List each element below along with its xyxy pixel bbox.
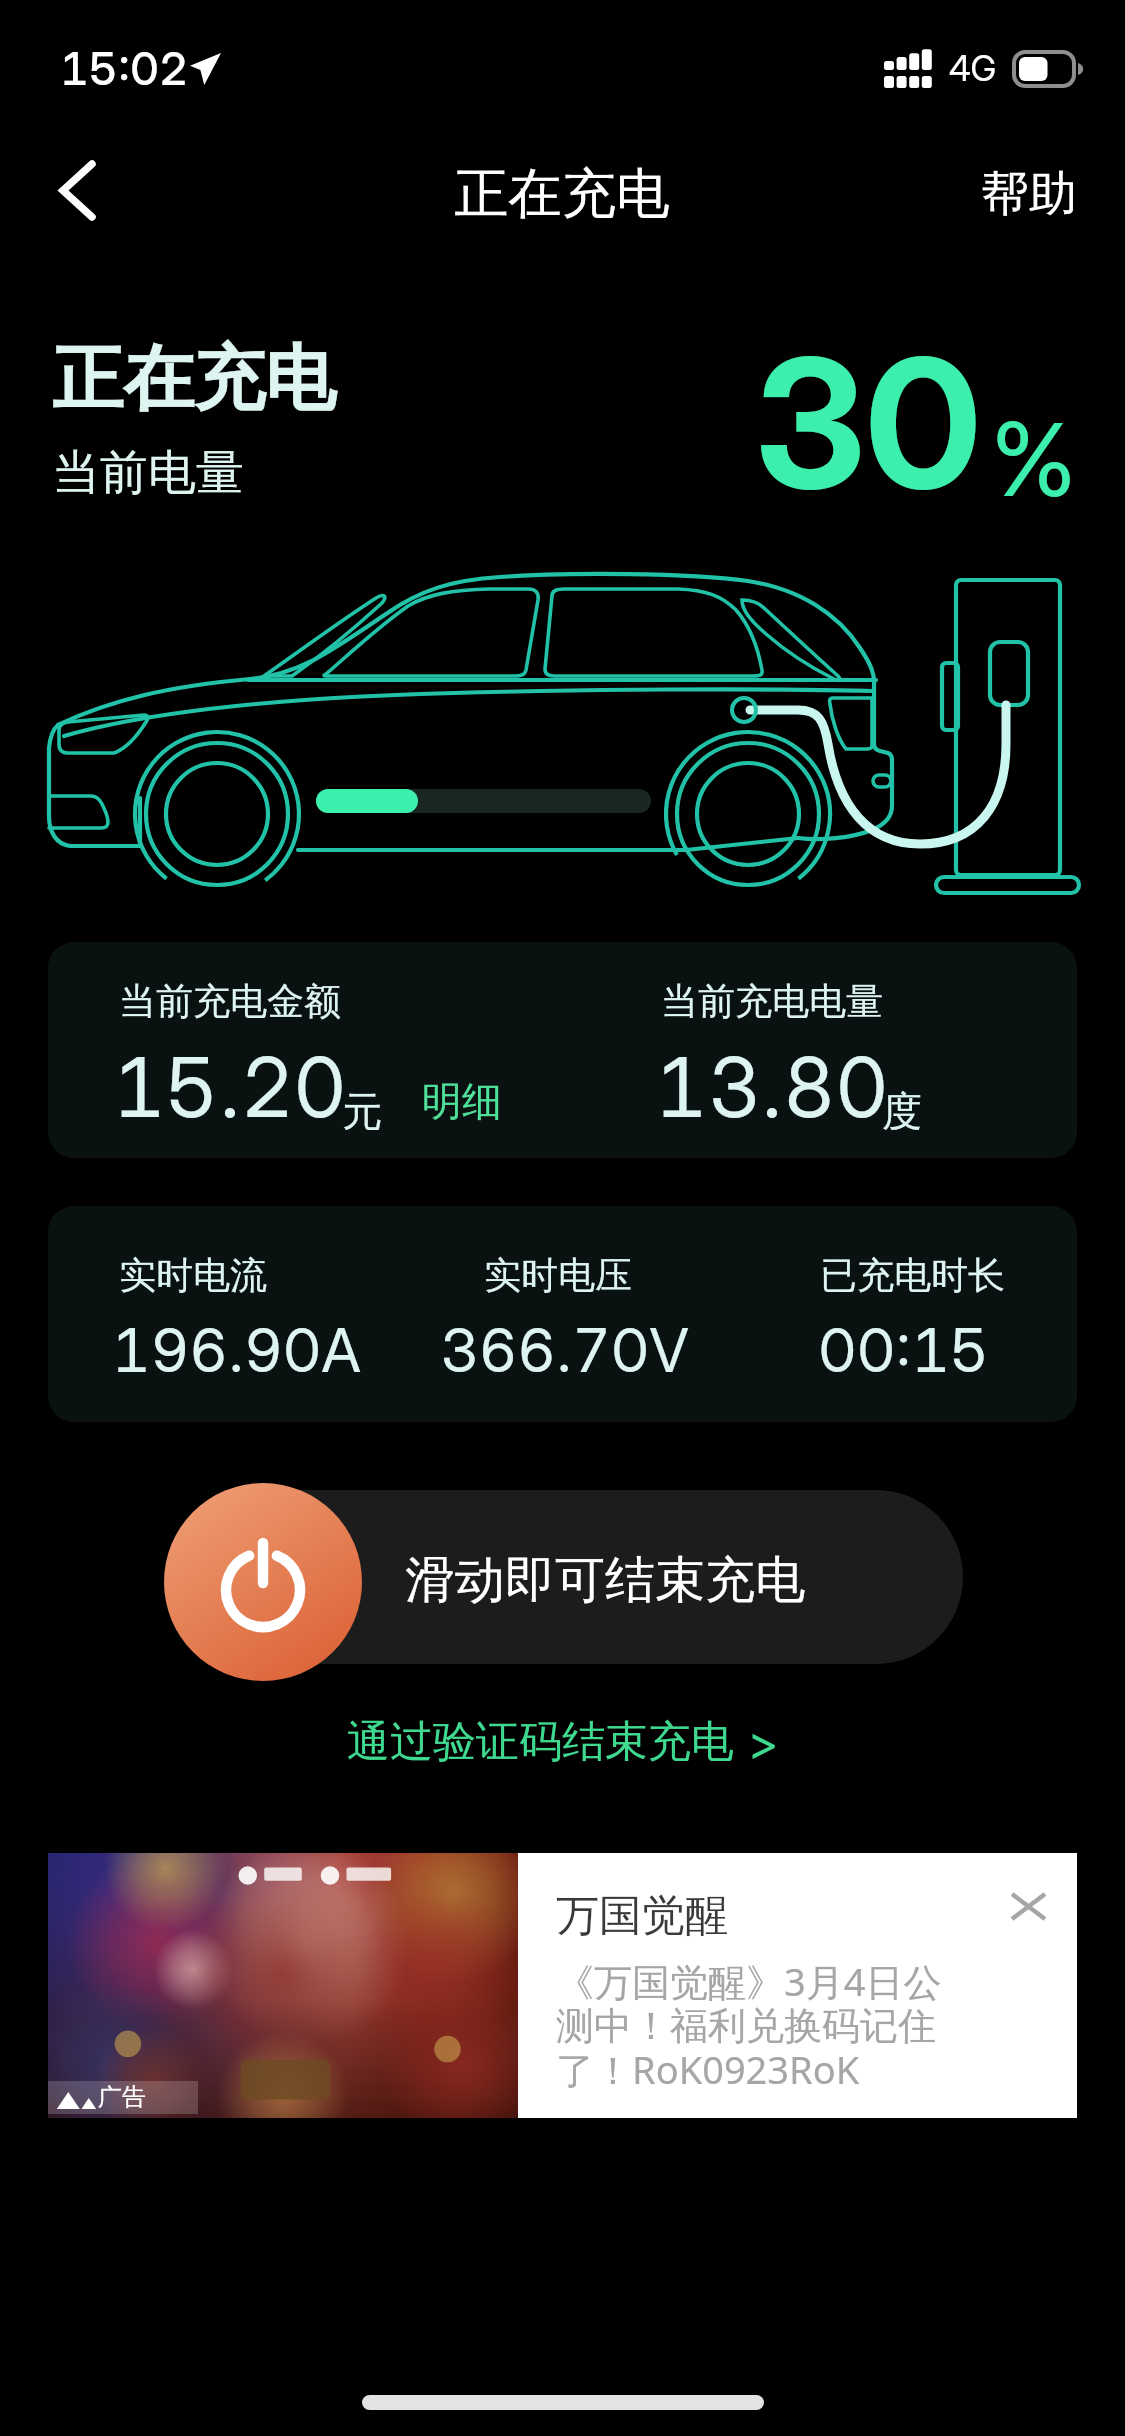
- button[interactable]: 通过验证码结束充电: [317, 1699, 809, 1785]
- staticText: 当前充电电量: [661, 978, 883, 1025]
- staticText: 00:15: [818, 1314, 989, 1387]
- staticText: 已充电时长: [820, 1252, 1005, 1299]
- staticText: 通过验证码结束充电: [347, 1715, 734, 1769]
- button[interactable]: 广告图片: [48, 1853, 518, 2118]
- staticText: 《万国觉醒》3月4日公测中！福利兑换码记住了！RoK0923RoK: [556, 1955, 968, 2095]
- staticText: 4G: [949, 47, 997, 89]
- staticText: 当前电量: [52, 443, 244, 503]
- staticText: 正在充电: [454, 160, 670, 228]
- staticText: 帮助: [981, 164, 1077, 224]
- staticText: 滑动即可结束充电: [405, 1549, 805, 1612]
- staticText: 196.90A: [112, 1314, 361, 1387]
- staticText: 广告: [98, 2082, 146, 2112]
- staticText: 实时电压: [484, 1252, 632, 1299]
- staticText: 元: [342, 1086, 382, 1136]
- staticText: 度: [882, 1086, 922, 1136]
- button[interactable]: 当前充电金额: [48, 942, 1077, 1158]
- staticText: %: [991, 398, 1077, 520]
- staticText: 15:02: [60, 41, 189, 95]
- staticText: 13.80: [655, 1038, 889, 1137]
- staticText: 正在充电: [52, 335, 336, 424]
- button[interactable]: 关闭: [1000, 1878, 1074, 1952]
- staticText: >: [748, 1713, 779, 1771]
- button[interactable]: 结束充电: [164, 1483, 362, 1681]
- staticText: 30: [755, 316, 982, 531]
- staticText: 366.70V: [440, 1314, 689, 1387]
- button[interactable]: 明细: [408, 1074, 516, 1128]
- button[interactable]: Back: [24, 132, 138, 242]
- staticText: 15.20: [113, 1038, 347, 1137]
- staticText: 万国觉醒: [556, 1889, 728, 1943]
- button[interactable]: 万国觉醒: [518, 1853, 1077, 2118]
- staticText: 实时电流: [119, 1252, 267, 1299]
- button[interactable]: 帮助: [951, 146, 1101, 246]
- staticText: 当前充电金额: [119, 978, 341, 1025]
- button[interactable]: 实时电流: [48, 1206, 1077, 1422]
- button[interactable]: 滑动即可结束充电: [176, 1490, 963, 1664]
